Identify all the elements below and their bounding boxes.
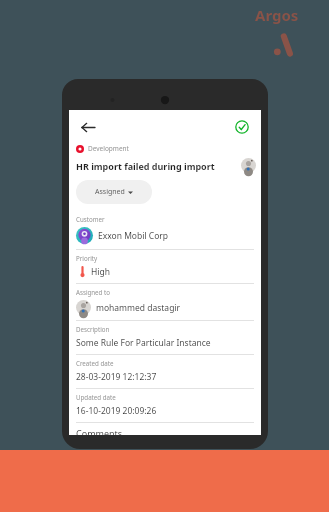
- staticText: Argos: [255, 5, 299, 25]
- button[interactable]: Done: [230, 115, 254, 139]
- button[interactable]: Updated date: [69, 389, 261, 423]
- staticText: Comments: [76, 427, 123, 435]
- staticText: Some Rule For Particular Instance: [76, 337, 211, 349]
- button[interactable]: Created date: [69, 355, 261, 389]
- button[interactable]: Priority: [69, 250, 261, 284]
- staticText: Exxon Mobil Corp: [98, 230, 169, 242]
- button[interactable]: Customer: [69, 211, 261, 250]
- staticText: Development: [88, 144, 129, 153]
- staticText: mohammed dastagir: [96, 302, 181, 314]
- button[interactable]: Description: [69, 321, 261, 355]
- staticText: High: [91, 266, 110, 278]
- button[interactable]: Back: [75, 114, 101, 140]
- staticText: Description: [76, 325, 110, 333]
- staticText: Assigned to: [76, 288, 110, 296]
- staticText: Assigned: [95, 187, 125, 197]
- staticText: Updated date: [76, 393, 116, 401]
- staticText: Created date: [76, 359, 114, 367]
- staticText: HR import failed during import: [76, 160, 238, 172]
- staticText: Customer: [76, 215, 105, 223]
- staticText: 16-10-2019 20:09:26: [76, 405, 157, 417]
- button[interactable]: Assigned to: [69, 284, 261, 321]
- staticText: 28-03-2019 12:12:37: [76, 371, 157, 383]
- button[interactable]: Assigned: [76, 180, 152, 204]
- staticText: Priority: [76, 254, 98, 262]
